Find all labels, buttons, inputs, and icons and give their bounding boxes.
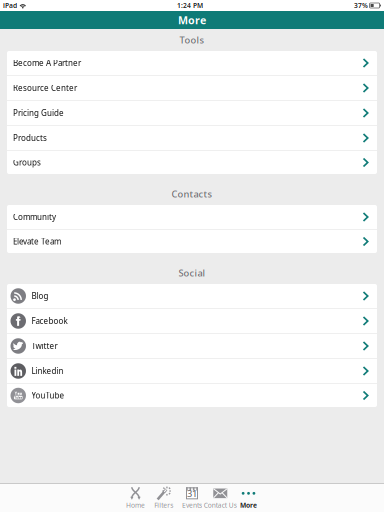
staticText: Groups <box>13 157 41 168</box>
staticText: 37% <box>354 1 368 10</box>
staticText: Products <box>13 133 47 143</box>
staticText: Resource Center <box>13 83 77 93</box>
staticText: Linkedin <box>31 366 63 376</box>
button[interactable]: More <box>236 484 261 511</box>
staticText: iPad <box>3 1 17 10</box>
button[interactable]: Filters <box>151 484 176 511</box>
staticText: 31 <box>187 487 197 499</box>
staticText: Become A Partner <box>13 58 81 68</box>
staticText: More <box>178 13 206 27</box>
button[interactable]: Twitter <box>7 334 377 359</box>
staticText: Filters <box>154 501 173 510</box>
button[interactable]: Home <box>123 484 148 511</box>
staticText: More <box>240 501 257 510</box>
staticText: Contacts <box>171 188 212 200</box>
button[interactable]: Community <box>7 205 377 230</box>
staticText: Contact Us <box>204 501 237 510</box>
button[interactable]: Facebook <box>7 309 377 334</box>
button[interactable]: Blog <box>7 284 377 309</box>
staticText: Pricing Guide <box>13 108 64 118</box>
button[interactable]: Contact Us <box>207 484 233 511</box>
staticText: Events <box>182 501 202 510</box>
staticText: 1:24 PM <box>177 1 203 10</box>
staticText: Community <box>13 212 56 222</box>
button[interactable]: Become A Partner <box>7 51 377 76</box>
button[interactable]: Groups <box>7 151 377 174</box>
staticText: Elevate Team <box>13 236 61 247</box>
button[interactable]: 31 <box>179 484 205 511</box>
button[interactable]: Elevate Team <box>7 230 377 253</box>
staticText: Home <box>126 501 145 510</box>
staticText: YouTube <box>31 390 64 401</box>
button[interactable]: Linkedin <box>7 359 377 384</box>
button[interactable]: YouTube <box>7 384 377 407</box>
button[interactable]: Resource Center <box>7 76 377 101</box>
staticText: Blog <box>31 291 48 301</box>
staticText: Facebook <box>31 316 67 326</box>
staticText: Tools <box>179 34 204 46</box>
staticText: Twitter <box>31 341 57 351</box>
button[interactable]: Products <box>7 126 377 151</box>
staticText: Social <box>178 267 205 279</box>
button[interactable]: Pricing Guide <box>7 101 377 126</box>
